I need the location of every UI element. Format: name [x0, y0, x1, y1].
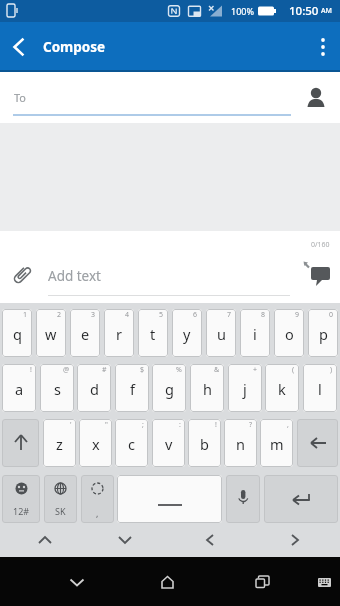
button[interactable]: t: [138, 309, 168, 357]
button[interactable]: 12#: [2, 475, 40, 523]
staticText: #: [102, 365, 107, 375]
staticText: ,: [96, 507, 99, 519]
staticText: l: [318, 379, 322, 399]
button[interactable]: [301, 81, 331, 115]
button[interactable]: u: [206, 309, 236, 357]
button[interactable]: h: [190, 364, 224, 412]
button[interactable]: c: [115, 419, 148, 467]
button[interactable]: [25, 525, 65, 555]
staticText: o: [285, 324, 294, 344]
staticText: ": [105, 420, 108, 430]
staticText: (: [292, 365, 295, 375]
button[interactable]: q: [2, 309, 32, 357]
button[interactable]: [2, 419, 39, 467]
button[interactable]: [297, 419, 338, 467]
button[interactable]: p: [308, 309, 338, 357]
button[interactable]: SK: [44, 475, 77, 523]
staticText: To: [14, 90, 27, 105]
button[interactable]: x: [79, 419, 112, 467]
staticText: i: [253, 324, 257, 344]
button[interactable]: o: [274, 309, 304, 357]
button[interactable]: ,: [81, 475, 114, 523]
staticText: k: [278, 379, 286, 399]
button[interactable]: a: [2, 364, 36, 412]
staticText: 0: [329, 310, 334, 320]
staticText: &: [214, 365, 220, 375]
staticText: n: [236, 434, 245, 454]
button[interactable]: [105, 525, 145, 555]
staticText: c: [128, 434, 135, 454]
staticText: %: [176, 365, 182, 375]
button[interactable]: [147, 562, 187, 602]
staticText: 1: [23, 310, 28, 320]
button[interactable]: m: [260, 419, 293, 467]
staticText: ,: [287, 420, 289, 430]
button[interactable]: [226, 475, 260, 523]
staticText: 6: [193, 310, 198, 320]
staticText: h: [203, 379, 212, 399]
button[interactable]: [300, 257, 334, 293]
staticText: t: [150, 324, 156, 344]
button[interactable]: r: [104, 309, 134, 357]
staticText: 2: [57, 310, 62, 320]
staticText: ;: [142, 420, 144, 430]
button[interactable]: l: [303, 364, 337, 412]
staticText: f: [130, 379, 135, 399]
staticText: !: [30, 365, 32, 375]
staticText: x: [92, 434, 100, 454]
button[interactable]: [117, 475, 222, 523]
staticText: @: [63, 365, 70, 375]
button[interactable]: i: [240, 309, 270, 357]
staticText: u: [217, 324, 226, 344]
staticText: SK: [55, 505, 66, 517]
button[interactable]: w: [36, 309, 66, 357]
staticText: d: [90, 379, 99, 399]
button[interactable]: [264, 475, 338, 523]
staticText: ): [330, 365, 333, 375]
button[interactable]: To: [0, 72, 340, 123]
staticText: j: [243, 379, 247, 399]
button[interactable]: g: [152, 364, 186, 412]
staticText: e: [81, 324, 90, 344]
staticText: ?: [249, 420, 253, 430]
button[interactable]: v: [152, 419, 185, 467]
button[interactable]: [306, 22, 340, 72]
staticText: 4: [125, 310, 130, 320]
button[interactable]: Add text: [48, 267, 101, 285]
button[interactable]: z: [43, 419, 76, 467]
button[interactable]: e: [70, 309, 100, 357]
button[interactable]: f: [115, 364, 149, 412]
staticText: 7: [227, 310, 232, 320]
staticText: AM: [321, 6, 333, 16]
button[interactable]: b: [188, 419, 221, 467]
staticText: !: [215, 420, 217, 430]
button[interactable]: [5, 257, 39, 293]
staticText: y: [183, 324, 191, 344]
staticText: +: [253, 365, 258, 375]
staticText: 0/160: [311, 240, 330, 250]
button[interactable]: [0, 22, 36, 72]
button[interactable]: j: [228, 364, 262, 412]
staticText: 8: [261, 310, 266, 320]
button[interactable]: k: [265, 364, 299, 412]
staticText: r: [116, 324, 122, 344]
staticText: 9: [295, 310, 300, 320]
staticText: v: [165, 434, 173, 454]
button[interactable]: s: [40, 364, 74, 412]
button[interactable]: [57, 562, 97, 602]
staticText: s: [54, 379, 61, 399]
staticText: $: [140, 365, 145, 375]
staticText: q: [13, 324, 22, 344]
button[interactable]: [242, 562, 282, 602]
button[interactable]: d: [77, 364, 111, 412]
button[interactable]: y: [172, 309, 202, 357]
staticText: 12#: [13, 505, 30, 517]
staticText: 3: [91, 310, 96, 320]
button[interactable]: n: [224, 419, 257, 467]
button[interactable]: [190, 525, 230, 555]
staticText: 10:50: [289, 3, 319, 19]
button[interactable]: [275, 525, 315, 555]
button[interactable]: [308, 564, 340, 600]
staticText: ': [70, 420, 72, 430]
staticText: :: [179, 420, 181, 430]
